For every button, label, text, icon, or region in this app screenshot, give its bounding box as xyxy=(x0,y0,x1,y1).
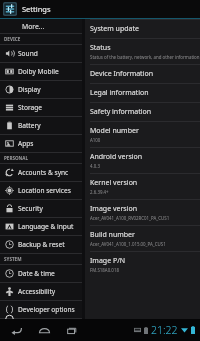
button[interactable]: Status bar xyxy=(132,323,197,337)
staticText: Accounts & sync xyxy=(18,168,69,177)
staticText: Build number xyxy=(90,230,135,240)
staticText: Status xyxy=(90,43,111,53)
staticText: Image P/N xyxy=(90,256,126,266)
staticText: Date & time xyxy=(18,269,55,278)
staticText: 21:22 xyxy=(151,323,178,337)
button[interactable]: Home xyxy=(36,320,52,340)
staticText: Status of the battery, network, and othe… xyxy=(90,54,200,60)
staticText: Settings xyxy=(22,4,51,14)
button[interactable]: Battery xyxy=(0,117,82,134)
button[interactable]: Security xyxy=(0,200,82,217)
button[interactable]: Status xyxy=(90,38,200,64)
staticText: Acer_AV041_A100_RV02RC01_PA_CUS1 xyxy=(90,215,170,221)
staticText: SYSTEM xyxy=(4,256,22,262)
button[interactable]: Storage xyxy=(0,99,82,116)
staticText: Legal information xyxy=(90,88,149,98)
button[interactable]: Apps xyxy=(0,135,82,152)
button[interactable]: Legal information xyxy=(90,83,200,102)
button[interactable]: Device Information xyxy=(90,64,200,83)
button[interactable]: Language & input xyxy=(0,218,82,235)
button[interactable]: Dolby Mobile xyxy=(0,63,82,80)
staticText: Sound xyxy=(18,49,38,58)
staticText: FM.S18A0.018 xyxy=(90,267,119,273)
button[interactable]: More... xyxy=(0,19,82,33)
button[interactable]: Android version xyxy=(90,147,200,173)
staticText: More... xyxy=(22,22,45,31)
staticText: Battery xyxy=(18,121,41,130)
button[interactable]: Recent apps xyxy=(64,320,80,340)
button[interactable]: Accounts & sync xyxy=(0,164,82,181)
button[interactable]: Sound xyxy=(0,45,82,62)
staticText: Kernel version xyxy=(90,178,138,188)
button[interactable]: Model number xyxy=(90,121,200,147)
staticText: Device Information xyxy=(90,69,154,79)
staticText: Storage xyxy=(18,103,43,112)
staticText: Language & input xyxy=(18,222,74,231)
button[interactable]: Image P/N xyxy=(90,251,200,277)
button[interactable]: Accessibility xyxy=(0,283,82,300)
staticText: Location services xyxy=(18,186,71,195)
staticText: A100 xyxy=(90,137,101,143)
button[interactable]: Back xyxy=(8,320,24,340)
staticText: Android version xyxy=(90,152,143,162)
button[interactable]: Image version xyxy=(90,199,200,225)
button[interactable]: Safety information xyxy=(90,102,200,121)
staticText: System update xyxy=(90,24,139,34)
staticText: DEVICE xyxy=(4,36,21,42)
button[interactable]: Date & time xyxy=(0,265,82,282)
button[interactable]: Location services xyxy=(0,182,82,199)
button[interactable]: Display xyxy=(0,81,82,98)
staticText: 4.0.3 xyxy=(90,163,100,169)
button[interactable]: Developer options xyxy=(0,301,82,318)
staticText: PERSONAL xyxy=(4,155,29,161)
button[interactable]: Build number xyxy=(90,225,200,251)
staticText: Backup & reset xyxy=(18,240,65,249)
button[interactable]: Kernel version xyxy=(90,173,200,199)
staticText: Image version xyxy=(90,204,138,214)
staticText: 2.6.39.4+ xyxy=(90,189,109,195)
staticText: Dolby Mobile xyxy=(18,67,59,76)
staticText: Model number xyxy=(90,126,139,136)
button[interactable]: Backup & reset xyxy=(0,236,82,253)
staticText: Display xyxy=(18,85,41,94)
staticText: Accessibility xyxy=(18,287,56,296)
staticText: Apps xyxy=(18,139,34,148)
staticText: Developer options xyxy=(18,305,75,314)
staticText: Safety information xyxy=(90,107,152,117)
button[interactable]: Settings xyxy=(0,0,200,18)
staticText: Acer_AV041_A100_1.015.00_PA_CUS1 xyxy=(90,241,166,247)
button[interactable]: System update xyxy=(90,19,200,38)
staticText: Security xyxy=(18,204,43,213)
